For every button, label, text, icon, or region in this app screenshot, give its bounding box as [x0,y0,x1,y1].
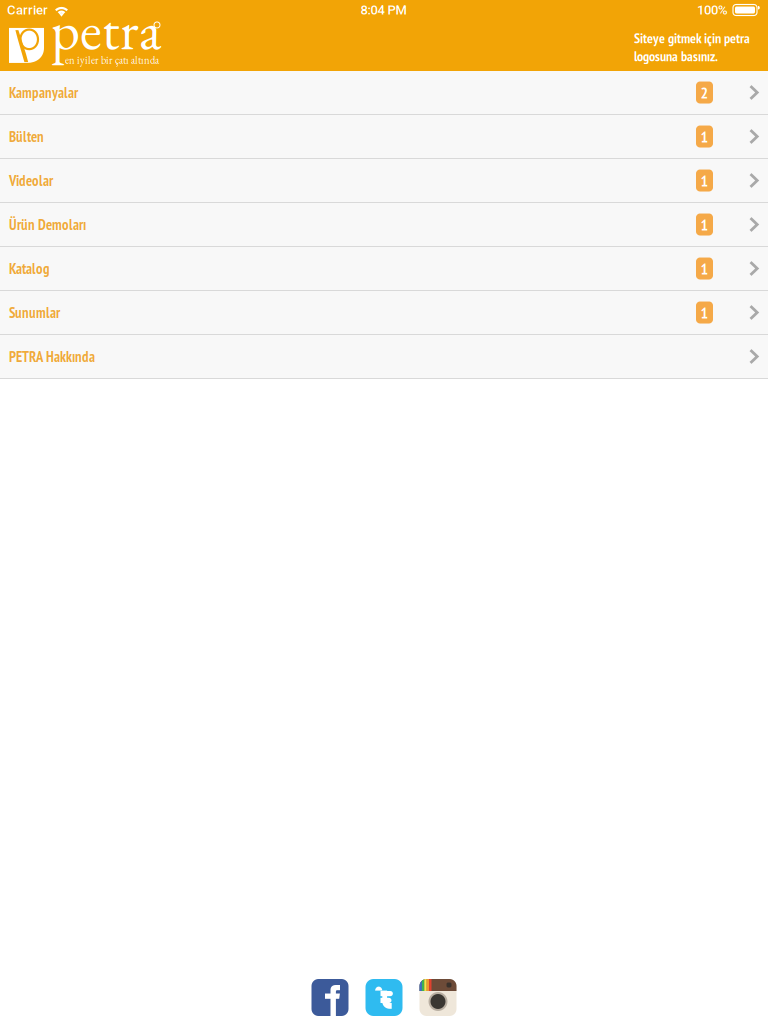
staticText: Katalog [9,259,49,278]
staticText: 1 [700,258,708,279]
staticText: 100% [697,2,728,18]
button[interactable]: Kampanyalar [0,71,768,115]
button[interactable]: Twitter [365,979,402,1016]
button[interactable]: Ürün Demoları [0,203,768,247]
button[interactable]: petra ana sayfaya git [0,20,170,71]
staticText: PETRA Hakkında [9,347,95,366]
staticText: 1 [700,214,708,235]
staticText: 8:04 PM [360,2,406,18]
button[interactable]: Katalog [0,247,768,291]
button[interactable]: Videolar [0,159,768,203]
staticText: 2 [700,82,708,103]
staticText: Videolar [9,171,53,190]
staticText: Ürün Demoları [9,215,86,234]
staticText: Kampanyalar [9,83,78,102]
staticText: petra [51,0,161,66]
button[interactable]: PETRA Hakkında [0,335,768,379]
staticText: 1 [700,302,708,323]
button[interactable]: Instagram [419,979,456,1016]
staticText: Bülten [9,127,44,146]
staticText: Carrier [7,2,48,18]
staticText: 1 [700,126,708,147]
button[interactable]: Bülten [0,115,768,159]
button[interactable]: Sunumlar [0,291,768,335]
staticText: en iyiler bir çatı altında [65,53,159,67]
staticText: Sunumlar [9,303,60,322]
button[interactable]: Facebook [311,979,348,1016]
staticText: 1 [700,170,708,191]
staticText: Siteye gitmek için petra logosuna basını… [634,29,750,65]
